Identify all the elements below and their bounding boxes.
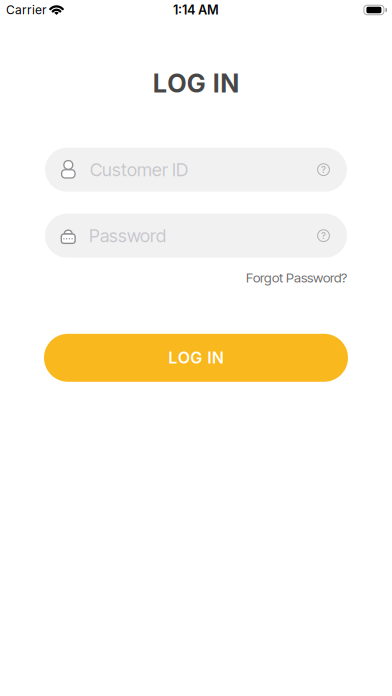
button[interactable]: Help <box>317 229 330 242</box>
button[interactable]: LOG IN <box>44 334 348 382</box>
staticText: Password <box>89 225 166 247</box>
staticText: ? <box>321 164 326 175</box>
staticText: 1:14 AM <box>173 2 219 18</box>
staticText: LOG IN <box>168 348 224 367</box>
staticText: Customer ID <box>90 159 188 181</box>
button[interactable]: Forgot Password? <box>246 270 347 286</box>
staticText: LOG IN <box>153 68 239 99</box>
staticText: Carrier <box>6 3 47 17</box>
button[interactable]: Password <box>45 214 347 258</box>
staticText: Forgot Password? <box>246 270 347 286</box>
button[interactable]: Help <box>317 163 330 176</box>
button[interactable]: Customer ID <box>45 148 347 192</box>
staticText: ? <box>321 230 326 241</box>
